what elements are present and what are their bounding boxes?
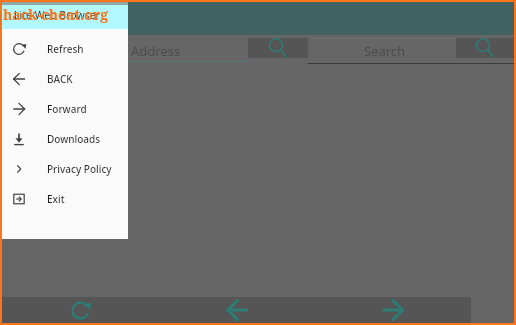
button[interactable]: BACK	[2, 64, 128, 94]
staticText: Search	[364, 42, 406, 58]
button[interactable]: Forward	[315, 297, 471, 323]
staticText: Privacy Policy	[47, 162, 112, 176]
button[interactable]: Downloads	[2, 124, 128, 154]
button[interactable]: Search	[314, 38, 456, 58]
button[interactable]: Forward	[2, 94, 128, 124]
button[interactable]: Privacy Policy	[2, 154, 128, 184]
staticText: hack-cheat.org	[3, 5, 109, 24]
staticText: Lite Web Browser	[14, 8, 100, 22]
button[interactable]: Exit	[2, 184, 128, 214]
staticText: BACK	[47, 72, 73, 86]
button[interactable]: Back	[159, 297, 315, 323]
button[interactable]: Search the web	[456, 38, 514, 58]
staticText: Forward	[47, 102, 87, 116]
button[interactable]: Address	[127, 38, 248, 62]
staticText: Exit	[47, 192, 65, 206]
staticText: Address	[131, 42, 181, 60]
staticText: Downloads	[47, 132, 101, 146]
staticText: Refresh	[47, 42, 84, 56]
button[interactable]: Refresh	[2, 34, 128, 64]
button[interactable]: Refresh	[2, 297, 159, 323]
button[interactable]: Go to address	[248, 38, 308, 58]
